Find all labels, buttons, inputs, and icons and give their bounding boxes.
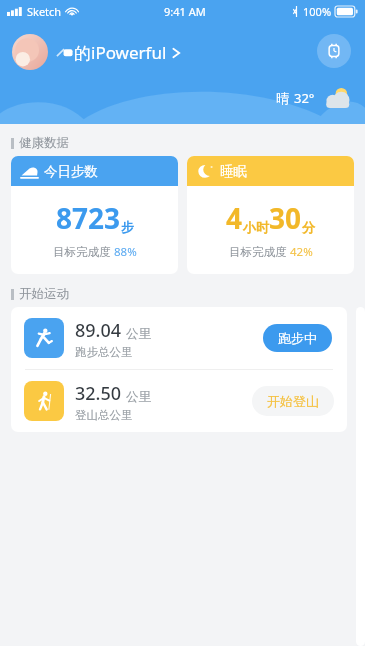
staticText: 开始登山	[267, 393, 319, 409]
staticText: 登山总公里	[75, 408, 133, 422]
staticText: 目标完成度	[53, 244, 114, 260]
staticText: 睡眠	[220, 163, 247, 180]
button[interactable]: 的iPowerful	[54, 37, 183, 68]
staticText: 89.04	[75, 318, 122, 343]
button[interactable]: 跑步中	[263, 324, 332, 352]
staticText: 今日步数	[44, 163, 98, 180]
staticText: 公里	[126, 389, 151, 405]
button[interactable]: 今日步数	[11, 156, 178, 274]
staticText: 88%	[114, 244, 137, 260]
staticText: 100%	[303, 4, 332, 19]
staticText: 分	[302, 219, 315, 235]
staticText: 32°	[294, 89, 315, 107]
button[interactable]: 开始登山	[252, 386, 334, 416]
staticText: Sketch	[27, 4, 62, 19]
staticText: 8723	[56, 199, 121, 237]
staticText: 跑步总公里	[75, 345, 133, 359]
staticText: 32.50	[75, 381, 122, 406]
staticText: 4	[226, 199, 243, 237]
button[interactable]: Profile avatar	[12, 34, 48, 70]
staticText: 的iPowerful	[74, 41, 167, 64]
staticText: 晴	[276, 90, 289, 106]
button[interactable]: 睡眠	[187, 156, 354, 274]
button[interactable]: Watch device	[317, 34, 351, 68]
button[interactable]: 89.04	[11, 307, 347, 369]
staticText: 42%	[290, 244, 313, 260]
staticText: 目标完成度	[229, 244, 290, 260]
staticText: 30	[269, 199, 302, 237]
button[interactable]: 晴	[276, 86, 355, 110]
staticText: 步	[121, 219, 134, 235]
staticText: 公里	[126, 326, 151, 342]
staticText: 开始运动	[19, 286, 69, 302]
staticText: 9:41 AM	[164, 4, 206, 19]
staticText: 小时	[243, 219, 269, 235]
button[interactable]: 32.50	[11, 370, 347, 432]
staticText: 跑步中	[278, 330, 317, 346]
staticText: 健康数据	[19, 135, 69, 151]
